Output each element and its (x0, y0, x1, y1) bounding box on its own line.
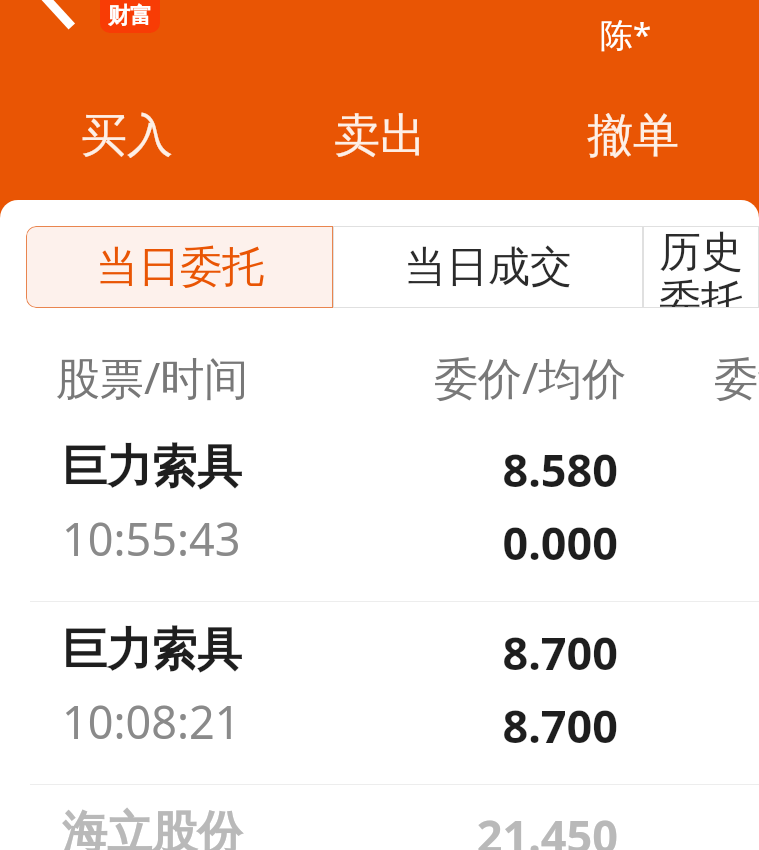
staticText: 21.450 (476, 805, 618, 850)
staticText: 买入 (81, 107, 173, 165)
button[interactable]: 巨力索具 (0, 602, 759, 784)
staticText: 陈* (600, 12, 652, 57)
staticText: 委价/均价 (434, 347, 627, 407)
staticText: 巨力索具 (62, 622, 242, 679)
staticText: 财富 (108, 2, 152, 30)
button[interactable]: 当日成交 (333, 226, 643, 308)
button[interactable]: 撤单 (506, 98, 759, 174)
staticText: 海立股份 (62, 805, 242, 850)
button[interactable]: 卖出 (253, 98, 506, 174)
staticText: 委量/成交 (714, 347, 759, 407)
staticText: 撤单 (587, 107, 679, 165)
staticText: 8.700 (502, 622, 618, 683)
staticText: 8.580 (502, 439, 618, 500)
button[interactable]: 陈* (600, 12, 652, 57)
staticText: 巨力索具 (62, 439, 242, 496)
button[interactable]: 财富 (100, 0, 160, 33)
staticText: 当日委托 (96, 241, 264, 294)
button[interactable]: 历史委托 (643, 226, 759, 308)
staticText: 0.000 (502, 512, 618, 573)
staticText: 8.700 (502, 695, 618, 756)
button[interactable]: 当日委托 (26, 226, 333, 308)
staticText: 10:08:21 (62, 691, 241, 752)
button[interactable]: 买入 (0, 98, 253, 174)
staticText: 卖出 (334, 107, 426, 165)
staticText: 股票/时间 (56, 347, 249, 407)
staticText: 10:55:43 (62, 508, 241, 569)
button[interactable]: 海立股份 (0, 785, 759, 850)
staticText: 历史委托 (643, 226, 759, 308)
staticText: 当日成交 (404, 241, 572, 294)
button[interactable]: 巨力索具 (0, 419, 759, 601)
